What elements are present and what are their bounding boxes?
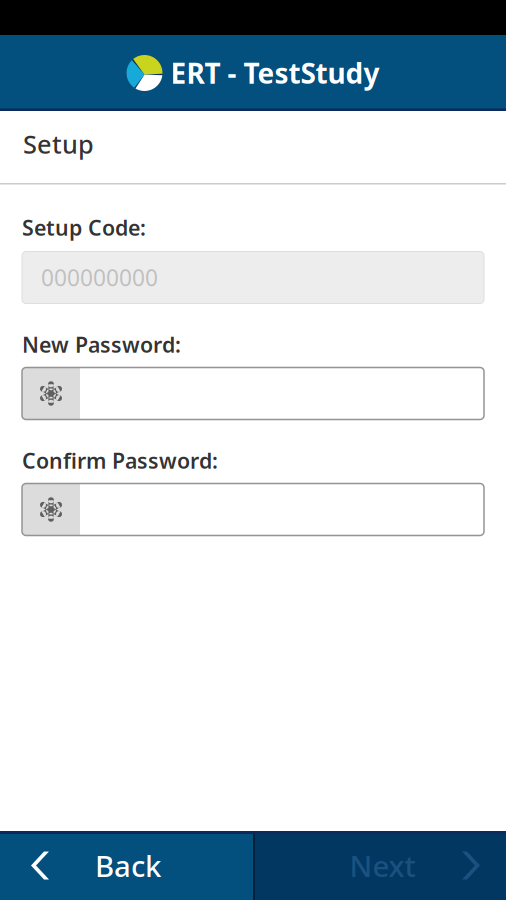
button[interactable]: Next xyxy=(255,831,506,900)
staticText: Next xyxy=(349,846,415,885)
staticText: New Password: xyxy=(22,330,181,359)
staticText: Back xyxy=(95,846,161,885)
button[interactable]: Back xyxy=(0,831,253,900)
staticText: Setup xyxy=(23,127,94,161)
staticText: Confirm Password: xyxy=(22,446,218,475)
staticText: ERT - TestStudy xyxy=(170,54,379,92)
staticText: Setup Code: xyxy=(22,213,146,242)
staticText: 000000000 xyxy=(41,262,158,292)
